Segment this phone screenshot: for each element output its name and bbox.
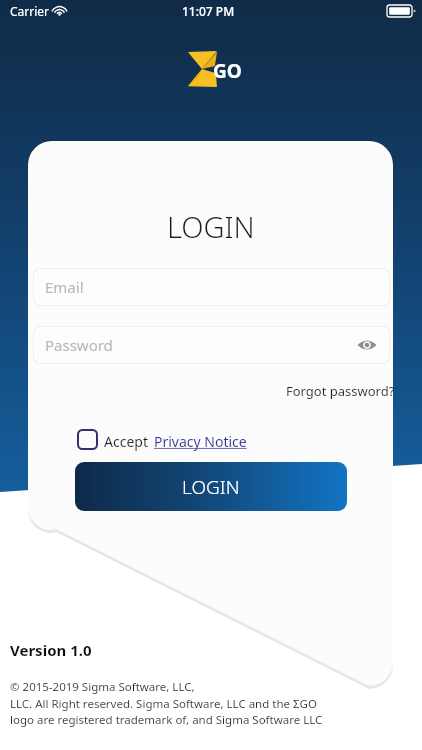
staticText: Password xyxy=(45,335,113,355)
staticText: Privacy Notice xyxy=(154,432,247,451)
button[interactable]: Email xyxy=(33,268,390,306)
staticText: Carrier xyxy=(10,3,50,19)
staticText: Email xyxy=(45,277,84,297)
staticText: GO xyxy=(213,58,242,84)
staticText: 11:07 PM xyxy=(182,3,235,19)
button[interactable]: Password xyxy=(33,326,390,364)
staticText: © 2015-2019 Sigma Software, LLC, LLC. Al… xyxy=(10,679,323,727)
button[interactable]: LOGIN xyxy=(75,462,347,511)
button[interactable]: Privacy Notice xyxy=(154,432,247,451)
staticText: LOGIN xyxy=(167,207,255,246)
button[interactable]: Accept privacy notice checkbox xyxy=(78,430,97,449)
staticText: Forgot password? xyxy=(286,382,395,400)
button[interactable]: Forgot password? xyxy=(286,382,395,400)
staticText: Version 1.0 xyxy=(10,640,92,660)
button[interactable]: Show password xyxy=(352,330,382,360)
staticText: Accept xyxy=(104,432,148,451)
staticText: LOGIN xyxy=(182,474,240,500)
